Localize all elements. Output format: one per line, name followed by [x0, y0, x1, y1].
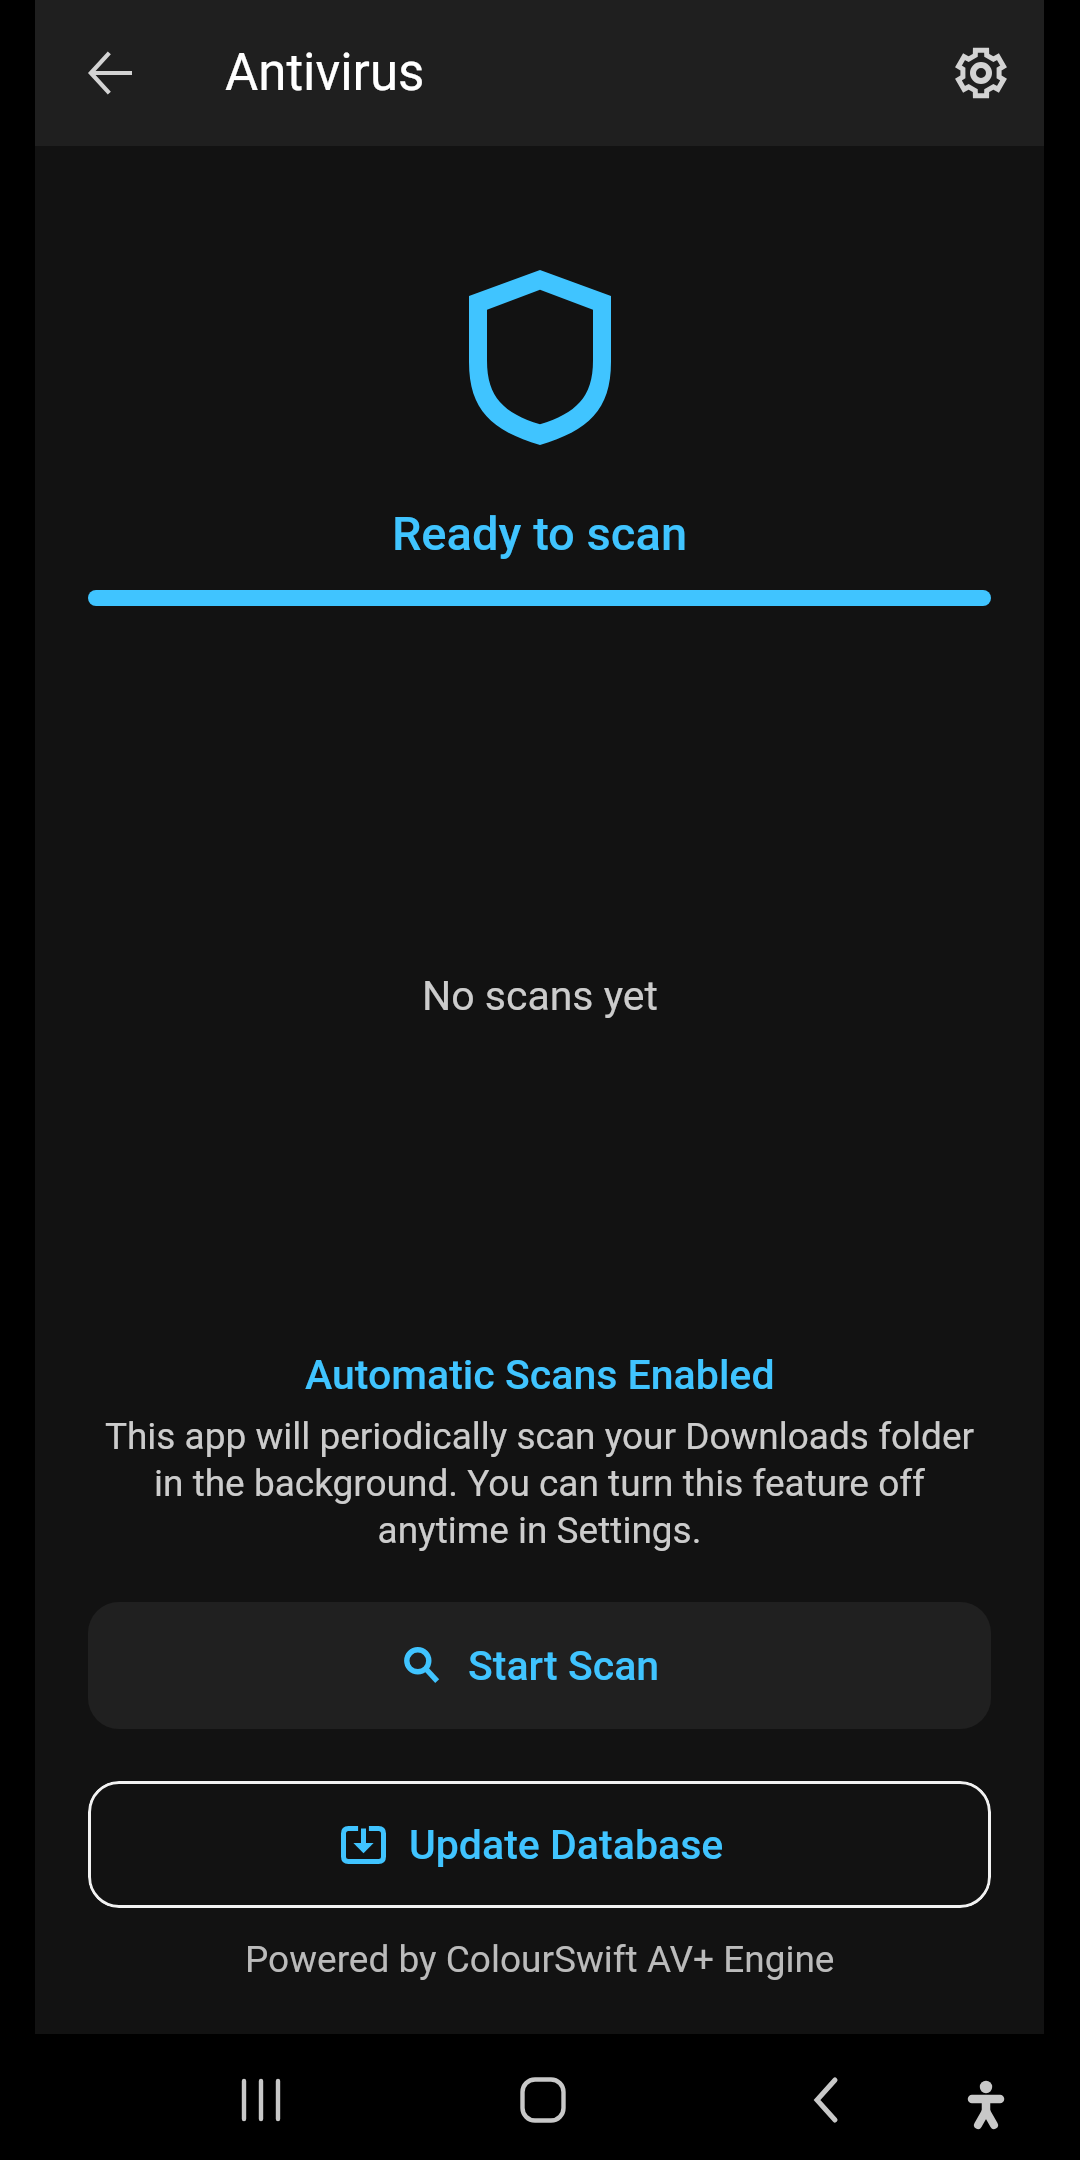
staticText: Automatic Scans Enabled	[305, 1351, 775, 1399]
staticText: Ready to scan	[392, 506, 688, 561]
button[interactable]: Settings	[937, 29, 1025, 117]
button[interactable]: Accessibility	[944, 2061, 1028, 2145]
button[interactable]: Home	[501, 2058, 585, 2142]
button[interactable]: Back	[67, 29, 155, 117]
button[interactable]: Back	[784, 2058, 868, 2142]
button[interactable]: Start Scan	[88, 1602, 991, 1729]
staticText: No scans yet	[422, 972, 658, 1020]
staticText: Powered by ColourSwift AV+ Engine	[245, 1938, 835, 1981]
staticText: Antivirus	[225, 43, 425, 103]
staticText: This app will periodically scan your Dow…	[88, 1415, 991, 1552]
staticText: Start Scan	[468, 1642, 660, 1690]
button[interactable]: Recent apps	[219, 2058, 303, 2142]
staticText: Update Database	[409, 1821, 724, 1869]
button[interactable]: Update Database	[88, 1781, 991, 1908]
